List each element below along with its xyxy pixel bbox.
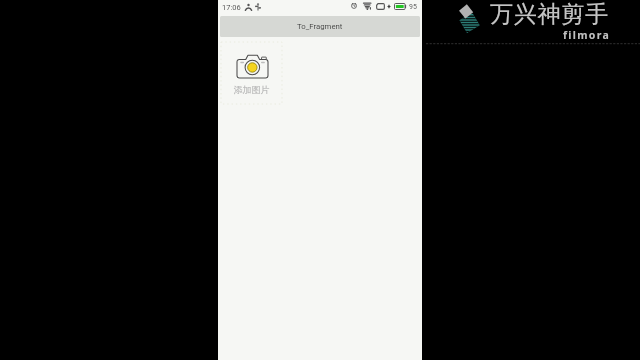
staticText: 17:06 xyxy=(222,3,241,12)
button[interactable]: 添加图片 xyxy=(221,42,282,104)
staticText: 添加图片 xyxy=(233,84,270,95)
button[interactable]: To_Fragment xyxy=(220,16,420,37)
staticText: 95 xyxy=(409,3,417,11)
staticText: 万兴神剪手 xyxy=(490,0,609,29)
staticText: filmora xyxy=(563,28,611,42)
staticText: To_Fragment xyxy=(297,22,343,31)
